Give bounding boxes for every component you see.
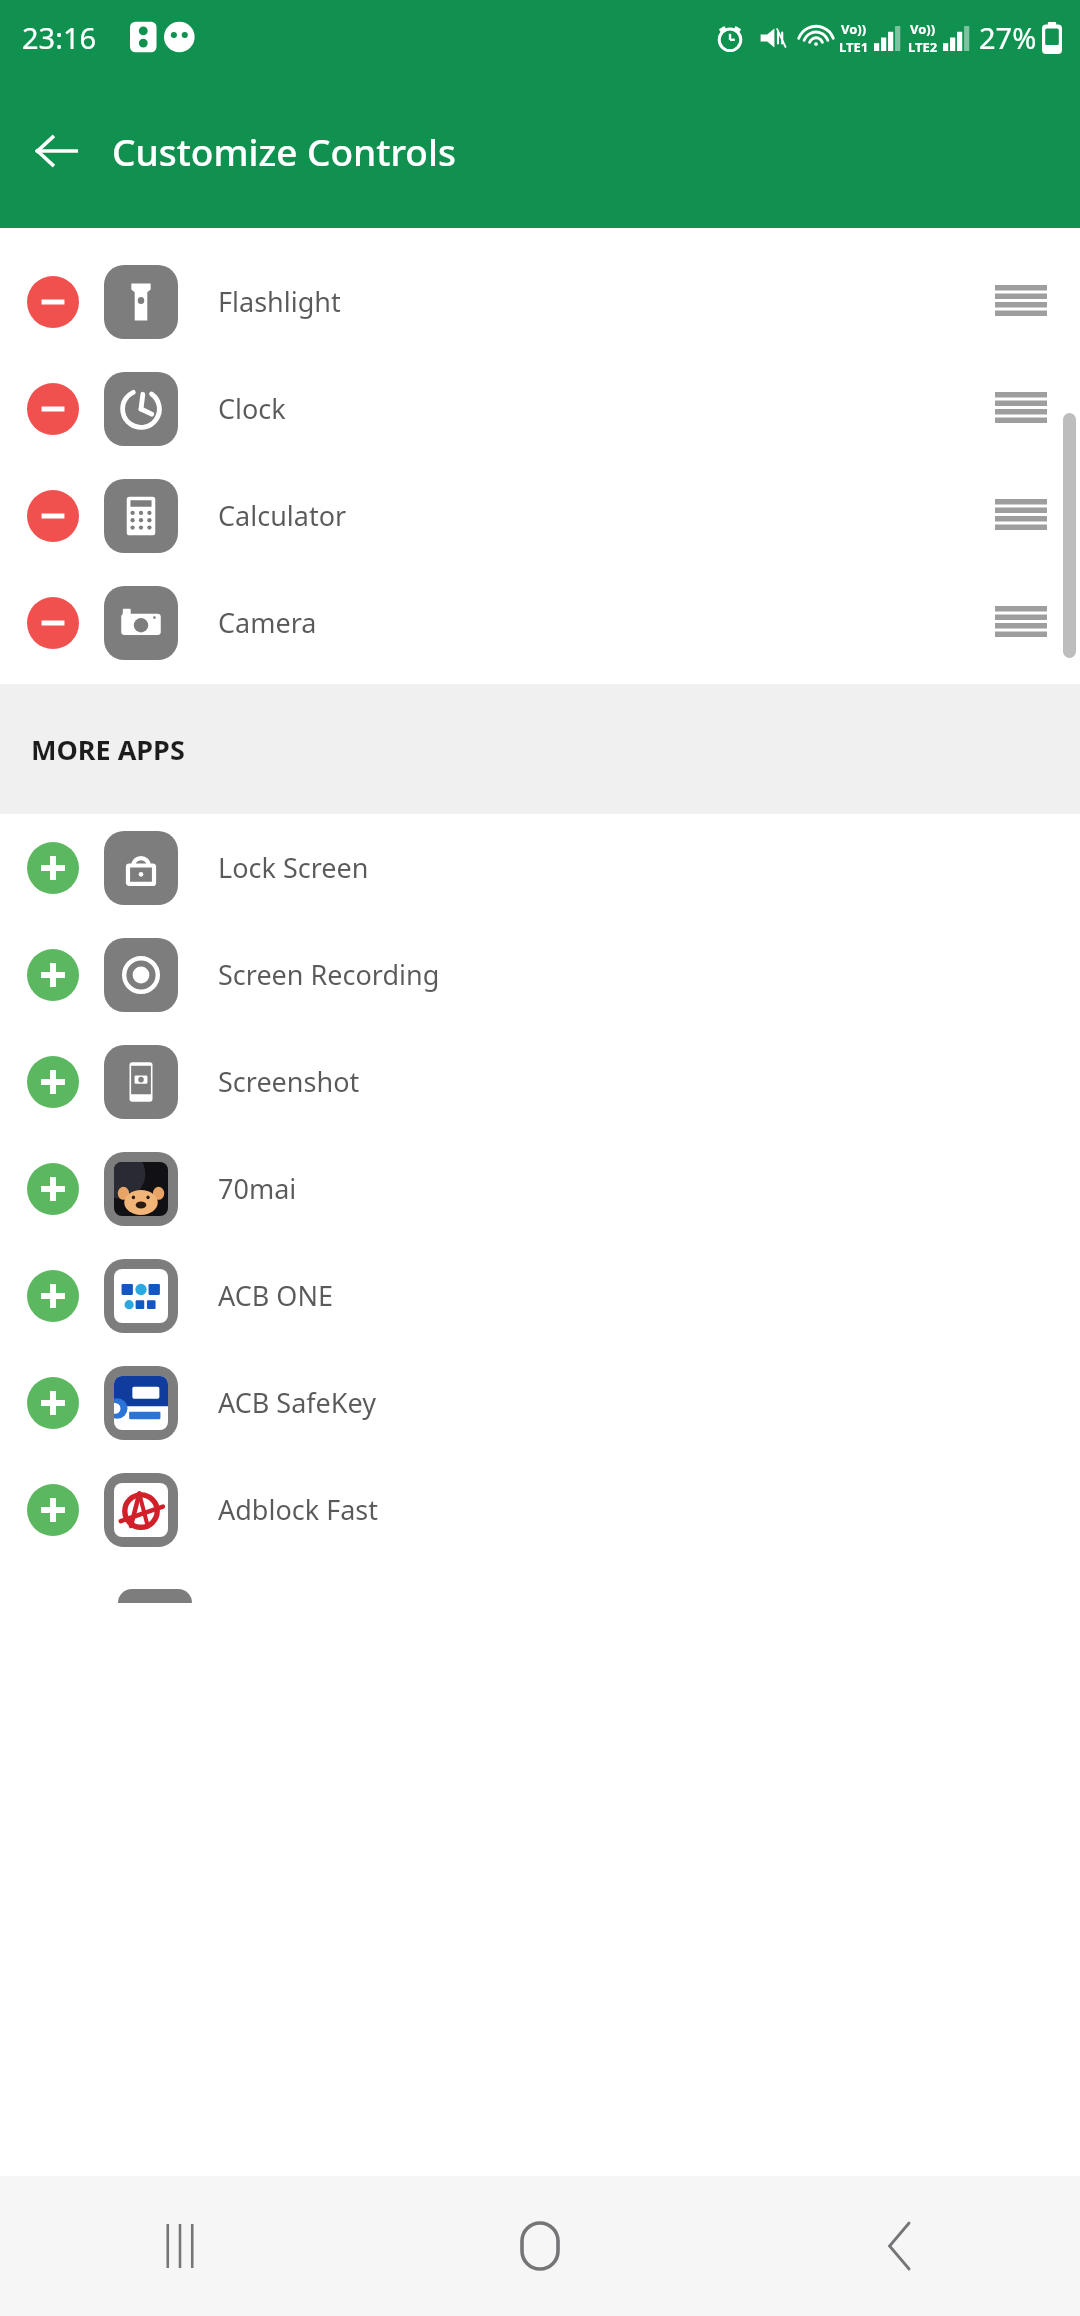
- button[interactable]: Add: [23, 838, 83, 898]
- button[interactable]: Remove: [0, 462, 1080, 569]
- button[interactable]: Reorder: [984, 381, 1058, 437]
- button[interactable]: Reorder: [984, 488, 1058, 544]
- staticText: MORE APPS: [31, 731, 185, 768]
- button[interactable]: Remove: [23, 593, 83, 653]
- button[interactable]: Remove: [0, 248, 1080, 355]
- button[interactable]: Back: [720, 2176, 1080, 2316]
- button[interactable]: Back: [20, 115, 92, 187]
- button[interactable]: Add: [23, 1159, 83, 1219]
- staticText: Vo)): [841, 20, 867, 38]
- staticText: ACB SafeKey: [218, 1384, 1080, 1421]
- button[interactable]: Add: [23, 1266, 83, 1326]
- button[interactable]: Add: [0, 1456, 1080, 1563]
- staticText: Flashlight: [218, 283, 984, 320]
- button[interactable]: Add: [0, 814, 1080, 921]
- staticText: Customize Controls: [112, 126, 456, 176]
- staticText: Adblock Fast: [218, 1491, 1080, 1528]
- staticText: Screen Recording: [218, 956, 1080, 993]
- staticText: LTE2: [908, 38, 938, 56]
- button[interactable]: Add: [0, 1242, 1080, 1349]
- button[interactable]: Add: [0, 1349, 1080, 1456]
- staticText: 23:16: [22, 18, 97, 57]
- button[interactable]: Add: [23, 945, 83, 1005]
- button[interactable]: Remove: [23, 486, 83, 546]
- button[interactable]: Remove: [0, 569, 1080, 676]
- button[interactable]: Home: [360, 2176, 720, 2316]
- staticText: Camera: [218, 604, 984, 641]
- button[interactable]: Remove: [23, 379, 83, 439]
- button[interactable]: Remove: [23, 272, 83, 332]
- button[interactable]: Add: [23, 1373, 83, 1433]
- button[interactable]: Remove: [0, 355, 1080, 462]
- staticText: ACB ONE: [218, 1277, 1080, 1314]
- staticText: Vo)): [910, 20, 936, 38]
- button[interactable]: Add: [23, 1480, 83, 1540]
- staticText: 27%: [979, 18, 1037, 57]
- staticText: 70mai: [218, 1170, 1080, 1207]
- staticText: Screenshot: [218, 1063, 1080, 1100]
- button[interactable]: Recent apps: [0, 2176, 360, 2316]
- staticText: Lock Screen: [218, 849, 1080, 886]
- button[interactable]: Add: [0, 921, 1080, 1028]
- button[interactable]: Reorder: [984, 595, 1058, 651]
- button[interactable]: Add: [23, 1052, 83, 1112]
- staticText: Clock: [218, 390, 984, 427]
- button[interactable]: Add: [0, 1135, 1080, 1242]
- staticText: Calculator: [218, 497, 984, 534]
- button[interactable]: Add: [0, 1028, 1080, 1135]
- staticText: LTE1: [839, 38, 869, 56]
- button[interactable]: Reorder: [984, 274, 1058, 330]
